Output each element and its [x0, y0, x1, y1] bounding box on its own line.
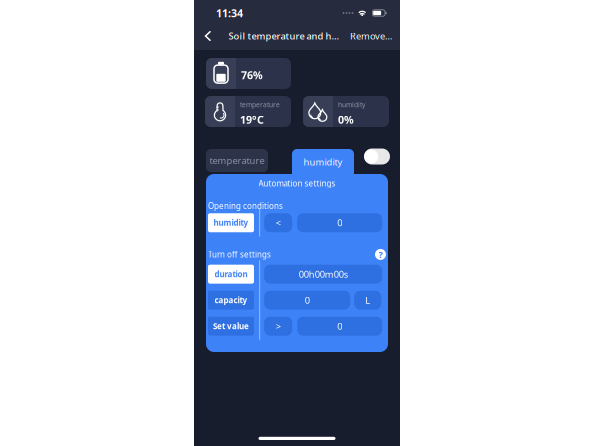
- staticText: 0%: [338, 113, 354, 127]
- button[interactable]: humidity: [208, 213, 254, 232]
- staticText: Automation settings: [258, 178, 335, 189]
- staticText: 00h00m00s: [299, 268, 348, 280]
- staticText: humidity: [303, 156, 342, 168]
- button[interactable]: 0: [297, 213, 382, 232]
- staticText: 11:34: [216, 6, 243, 20]
- staticText: 0: [337, 217, 342, 229]
- button[interactable]: humidity: [292, 149, 354, 175]
- staticText: L: [365, 294, 370, 306]
- staticText: >: [276, 320, 281, 332]
- button[interactable]: 0: [297, 317, 382, 336]
- staticText: Opening conditions: [208, 201, 283, 211]
- staticText: humidity: [338, 100, 365, 109]
- button[interactable]: temperature: [206, 149, 268, 172]
- staticText: temperature: [240, 100, 280, 109]
- staticText: temperature: [209, 154, 264, 167]
- button[interactable]: duration: [208, 265, 254, 284]
- staticText: 0: [305, 294, 310, 306]
- staticText: 0: [337, 320, 342, 332]
- button[interactable]: Set value: [208, 317, 254, 336]
- button[interactable]: 0: [264, 291, 350, 310]
- button[interactable]: 00h00m00s: [264, 265, 382, 284]
- staticText: Set value: [213, 321, 249, 331]
- staticText: Soil temperature and h…: [228, 30, 339, 42]
- staticText: Turn off settings: [208, 249, 271, 260]
- button[interactable]: >: [264, 317, 292, 336]
- button[interactable]: <: [264, 213, 292, 232]
- staticText: capacity: [214, 295, 247, 305]
- button[interactable]: Back: [198, 25, 218, 47]
- button[interactable]: L: [354, 291, 381, 310]
- button[interactable]: capacity: [208, 291, 254, 310]
- staticText: humidity: [213, 217, 248, 228]
- staticText: <: [276, 217, 281, 229]
- staticText: Remove…: [350, 30, 392, 42]
- button[interactable]: Remove…: [350, 25, 392, 47]
- button[interactable]: Enable automation: [364, 148, 390, 164]
- staticText: duration: [214, 269, 247, 279]
- staticText: 76%: [241, 68, 263, 82]
- button[interactable]: Help: [375, 248, 386, 261]
- staticText: 19°C: [240, 113, 264, 127]
- staticText: ?: [378, 248, 382, 261]
